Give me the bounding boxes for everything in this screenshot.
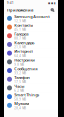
button[interactable]: Галерея bbox=[4, 31, 58, 40]
staticText: Часы bbox=[14, 83, 24, 89]
button[interactable]: Музыка bbox=[4, 101, 58, 110]
staticText: 58,9 MB bbox=[14, 98, 26, 101]
button[interactable]: Search bbox=[50, 7, 55, 12]
staticText: 6,2 MB bbox=[14, 89, 24, 92]
staticText: 45,1 MB bbox=[14, 28, 26, 31]
button[interactable]: Настройки bbox=[4, 57, 58, 66]
button[interactable]: Телефон bbox=[4, 75, 58, 84]
button[interactable]: Интернет bbox=[4, 49, 58, 57]
staticText: SmartThings bbox=[14, 92, 39, 97]
staticText: Календарь bbox=[14, 40, 34, 45]
staticText: 33,2 MB bbox=[14, 71, 26, 75]
staticText: 12,3 MB bbox=[14, 19, 26, 23]
staticText: 28,4 MB bbox=[14, 106, 26, 110]
staticText: Контакты bbox=[14, 22, 33, 28]
staticText: 17,5 MB bbox=[14, 80, 26, 84]
staticText: 88,7 MB bbox=[14, 37, 26, 40]
staticText: Настройки bbox=[14, 57, 35, 63]
button[interactable]: Сообщения bbox=[4, 66, 58, 75]
staticText: 9,8 MB bbox=[14, 63, 24, 66]
staticText: ◼ ◼ ▮ bbox=[48, 1, 55, 4]
button[interactable]: SmartThings bbox=[4, 92, 58, 101]
button[interactable]: Календарь bbox=[4, 40, 58, 49]
staticText: Галерея bbox=[14, 31, 28, 36]
staticText: 21,0 MB bbox=[14, 45, 26, 49]
button[interactable]: Часы bbox=[4, 84, 58, 92]
button[interactable]: Контакты bbox=[4, 23, 58, 31]
staticText: Приложения bbox=[7, 7, 33, 13]
button[interactable]: Samsung Account bbox=[4, 14, 58, 23]
staticText: Телефон bbox=[14, 75, 30, 80]
staticText: 64,4 MB bbox=[14, 54, 26, 58]
staticText: Музыка bbox=[14, 101, 29, 106]
staticText: Samsung Account bbox=[14, 14, 50, 19]
staticText: Интернет bbox=[14, 49, 33, 54]
staticText: 9:41 bbox=[7, 1, 14, 5]
staticText: Сообщения bbox=[14, 66, 37, 71]
